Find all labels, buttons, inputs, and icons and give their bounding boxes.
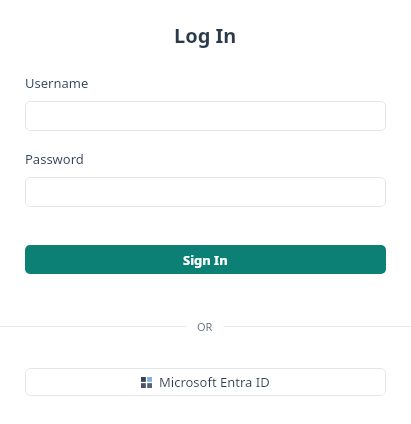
staticText: Sign In	[183, 251, 228, 269]
button[interactable]: Microsoft Entra ID	[25, 368, 386, 396]
button[interactable]: Sign In	[25, 245, 386, 274]
staticText: Log In	[174, 22, 237, 49]
staticText: Password	[25, 150, 84, 168]
staticText: Microsoft Entra ID	[159, 373, 270, 391]
staticText: OR	[197, 319, 213, 334]
button[interactable]: Text input field	[25, 101, 386, 131]
staticText: Username	[25, 74, 89, 92]
button[interactable]: Text input field	[25, 177, 386, 207]
